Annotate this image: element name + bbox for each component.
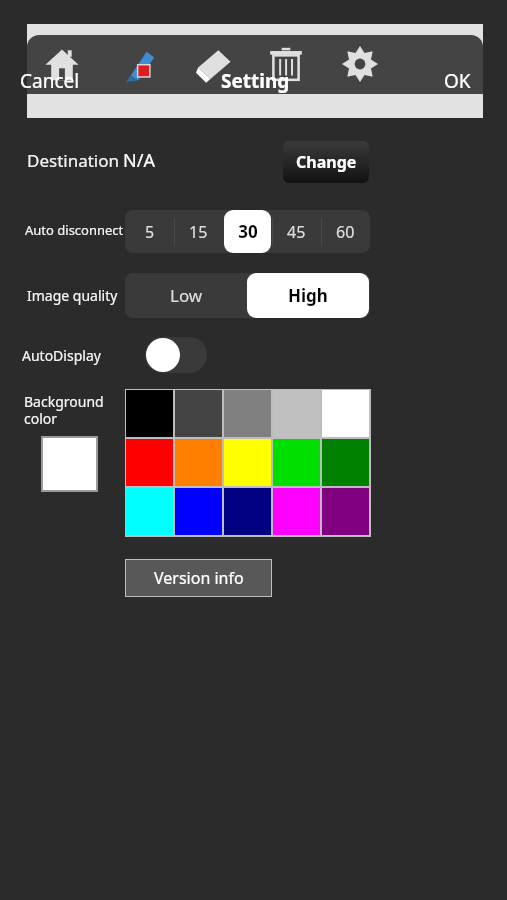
button[interactable]: OK bbox=[444, 66, 499, 96]
button[interactable]: AutoDisplay toggle bbox=[145, 337, 207, 373]
staticText: Image quality bbox=[27, 286, 118, 305]
button[interactable]: Settings bbox=[336, 40, 384, 88]
staticText: 30 bbox=[238, 220, 258, 243]
staticText: 15 bbox=[189, 221, 208, 243]
button[interactable]: 15 bbox=[174, 210, 223, 253]
staticText: 60 bbox=[336, 221, 355, 243]
staticText: Low bbox=[170, 284, 203, 307]
button[interactable]: Pen color bbox=[114, 40, 162, 88]
button[interactable]: 60 bbox=[321, 210, 370, 253]
button[interactable]: High bbox=[247, 273, 369, 318]
staticText: N/A bbox=[123, 148, 155, 173]
button[interactable]: Cancel bbox=[20, 66, 110, 96]
button[interactable]: Delete bbox=[262, 40, 310, 88]
staticText: AutoDisplay bbox=[22, 346, 101, 365]
button[interactable]: Low bbox=[125, 273, 247, 318]
button[interactable]: Eraser bbox=[190, 40, 238, 88]
staticText: Change bbox=[296, 151, 357, 173]
button[interactable]: Change bbox=[283, 141, 369, 183]
button[interactable]: 5 bbox=[125, 210, 174, 253]
staticText: Version info bbox=[154, 567, 244, 589]
staticText: OK bbox=[444, 68, 471, 94]
button[interactable]: 30 bbox=[223, 210, 272, 253]
staticText: Destination bbox=[27, 149, 120, 172]
staticText: High bbox=[288, 284, 328, 307]
staticText: Setting bbox=[221, 68, 290, 94]
staticText: Auto disconnect bbox=[25, 221, 124, 239]
staticText: 5 bbox=[145, 221, 155, 243]
button[interactable]: Version info bbox=[125, 559, 272, 597]
button[interactable]: 45 bbox=[272, 210, 321, 253]
button[interactable]: Home bbox=[38, 40, 86, 88]
staticText: Background color bbox=[24, 392, 104, 428]
staticText: 45 bbox=[287, 221, 306, 243]
staticText: Cancel bbox=[20, 68, 80, 94]
